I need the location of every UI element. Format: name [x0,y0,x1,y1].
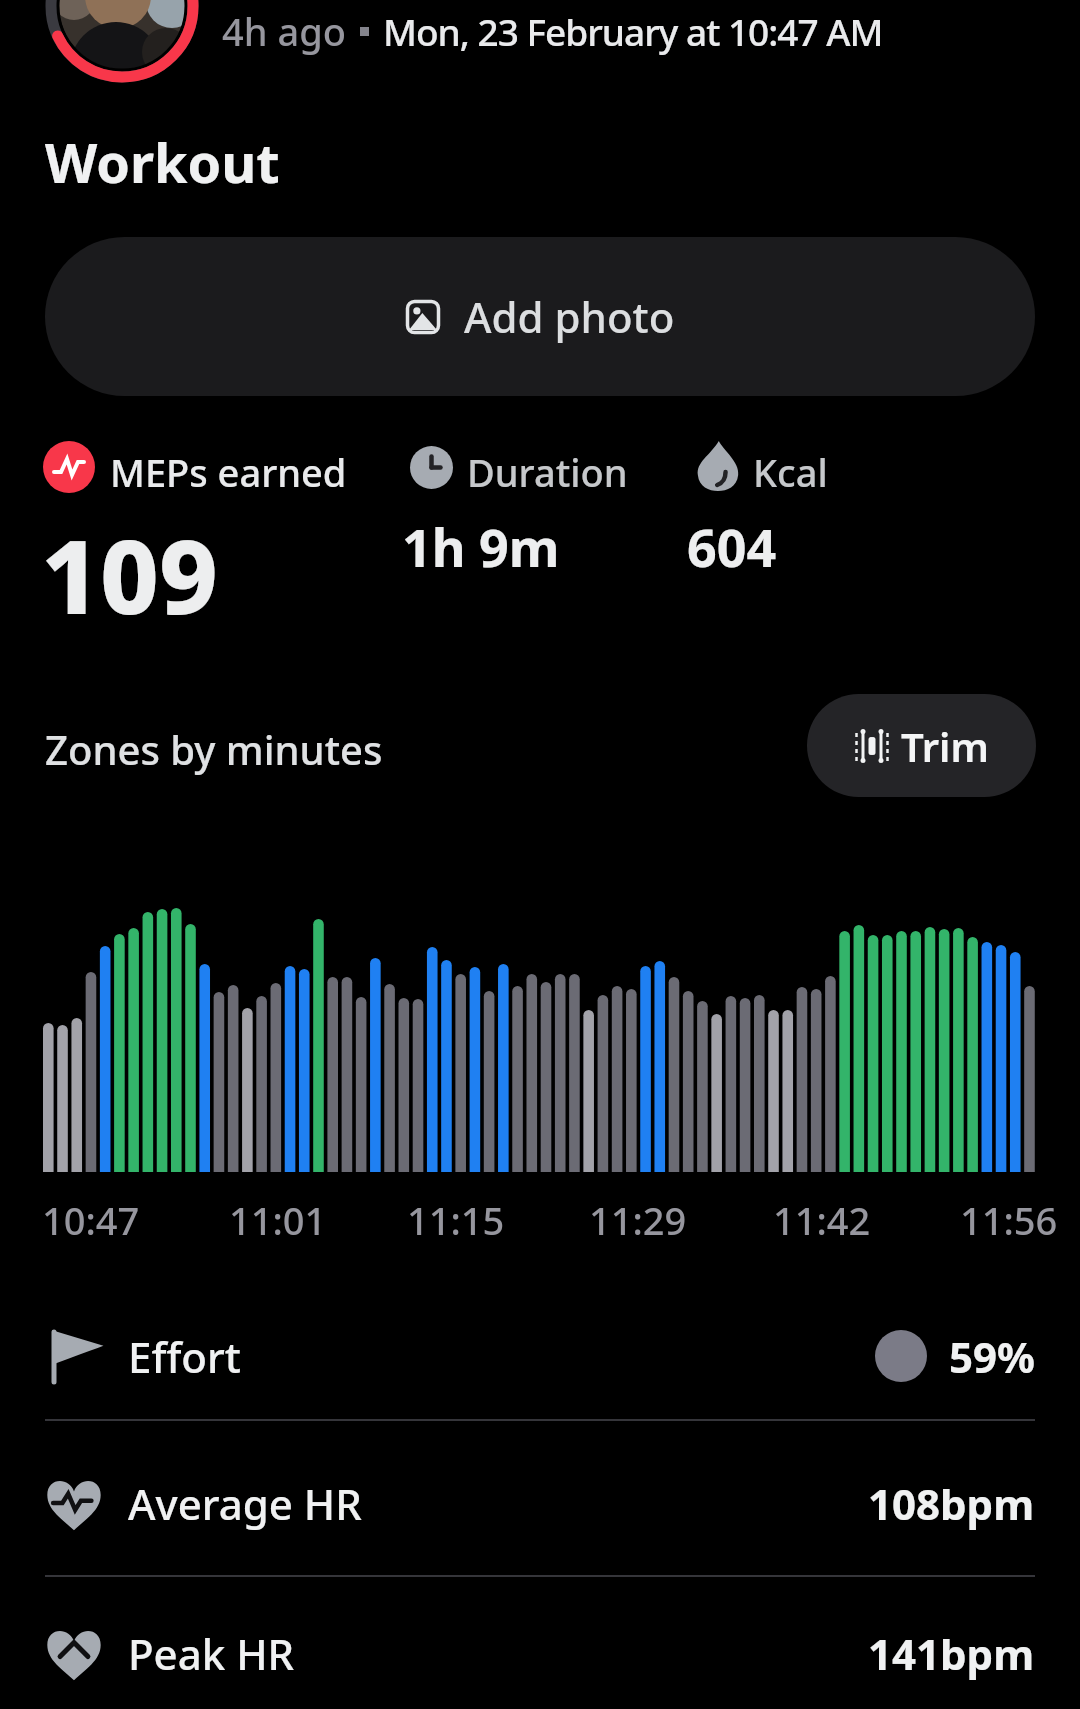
staticText: 11:42 [773,1194,871,1246]
staticText: 109 [41,505,218,644]
staticText: 11:15 [407,1194,505,1246]
staticText: Zones by minutes [45,722,383,776]
button[interactable]: Average HR [45,1468,1035,1538]
staticText: Peak HR [128,1625,295,1682]
staticText: Trim [901,719,989,773]
staticText: Average HR [128,1475,362,1532]
staticText: 10:47 [42,1194,140,1246]
staticText: MEPs earned [110,446,347,498]
staticText: 1h 9m [402,511,560,582]
staticText: Effort [128,1328,241,1385]
staticText: 11:29 [589,1194,687,1246]
staticText: Add photo [464,288,675,345]
staticText: 11:01 [229,1194,327,1246]
staticText: 141bpm [868,1625,1035,1682]
button[interactable]: Effort [45,1320,1035,1392]
button[interactable]: Trim [807,694,1036,797]
staticText: 108bpm [868,1475,1035,1532]
staticText: Duration [467,446,628,498]
button[interactable]: Add photo [45,237,1035,396]
staticText: 59% [949,1328,1035,1385]
staticText: 604 [687,511,777,582]
staticText: 4h ago [222,5,346,57]
staticText: Mon, 23 February at 10:47 AM [383,6,883,56]
staticText: 11:56 [960,1194,1058,1246]
button[interactable]: Peak HR [45,1618,1035,1688]
staticText: Kcal [753,446,828,498]
staticText: Workout [45,125,280,199]
